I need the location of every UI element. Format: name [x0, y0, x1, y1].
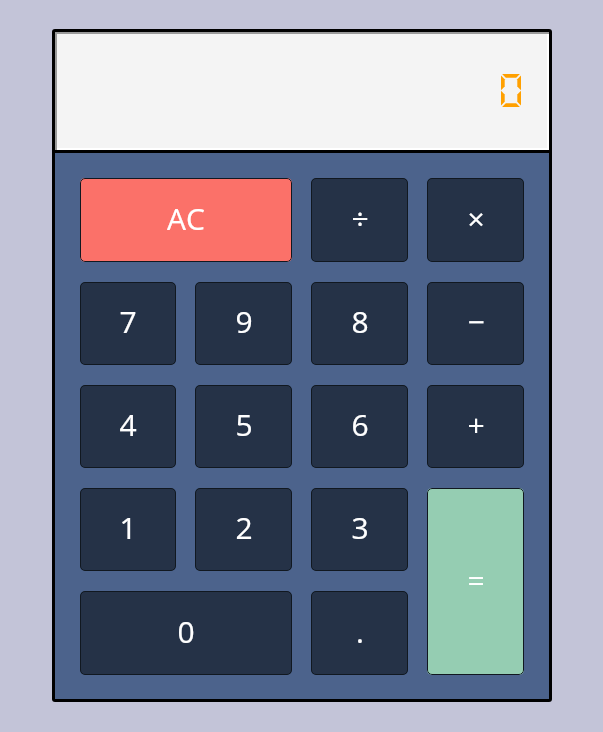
staticText: ÷ — [351, 198, 369, 239]
staticText: 7 — [119, 301, 137, 342]
button[interactable]: Divide — [311, 178, 408, 262]
staticText: . — [356, 611, 364, 652]
button[interactable]: 7 — [80, 282, 176, 365]
button[interactable]: 2 — [195, 488, 292, 571]
staticText: × — [467, 198, 485, 239]
other: Display showing 0 — [57, 34, 521, 148]
button[interactable]: 6 — [311, 385, 408, 468]
button[interactable]: 3 — [311, 488, 408, 571]
button[interactable]: AC — [80, 178, 292, 262]
button[interactable]: 5 — [195, 385, 292, 468]
staticText: 0 — [177, 611, 195, 652]
staticText: − — [467, 301, 485, 342]
staticText: + — [467, 404, 485, 445]
button[interactable]: 1 — [80, 488, 176, 571]
staticText: 5 — [235, 404, 253, 445]
button[interactable]: 8 — [311, 282, 408, 365]
staticText: = — [467, 559, 485, 600]
button[interactable]: 4 — [80, 385, 176, 468]
button[interactable]: Decimal point — [311, 591, 408, 675]
staticText: 1 — [119, 507, 137, 548]
staticText: 9 — [235, 301, 253, 342]
button[interactable]: 0 — [80, 591, 292, 675]
staticText: 6 — [351, 404, 369, 445]
button[interactable]: Equals — [427, 488, 524, 675]
button[interactable]: Subtract — [427, 282, 524, 365]
staticText: 8 — [351, 301, 369, 342]
button[interactable]: Multiply — [427, 178, 524, 262]
staticText: 3 — [351, 507, 369, 548]
button[interactable]: Add — [427, 385, 524, 468]
staticText: 2 — [235, 507, 253, 548]
staticText: AC — [167, 198, 205, 239]
button[interactable]: 9 — [195, 282, 292, 365]
staticText: 4 — [119, 404, 137, 445]
